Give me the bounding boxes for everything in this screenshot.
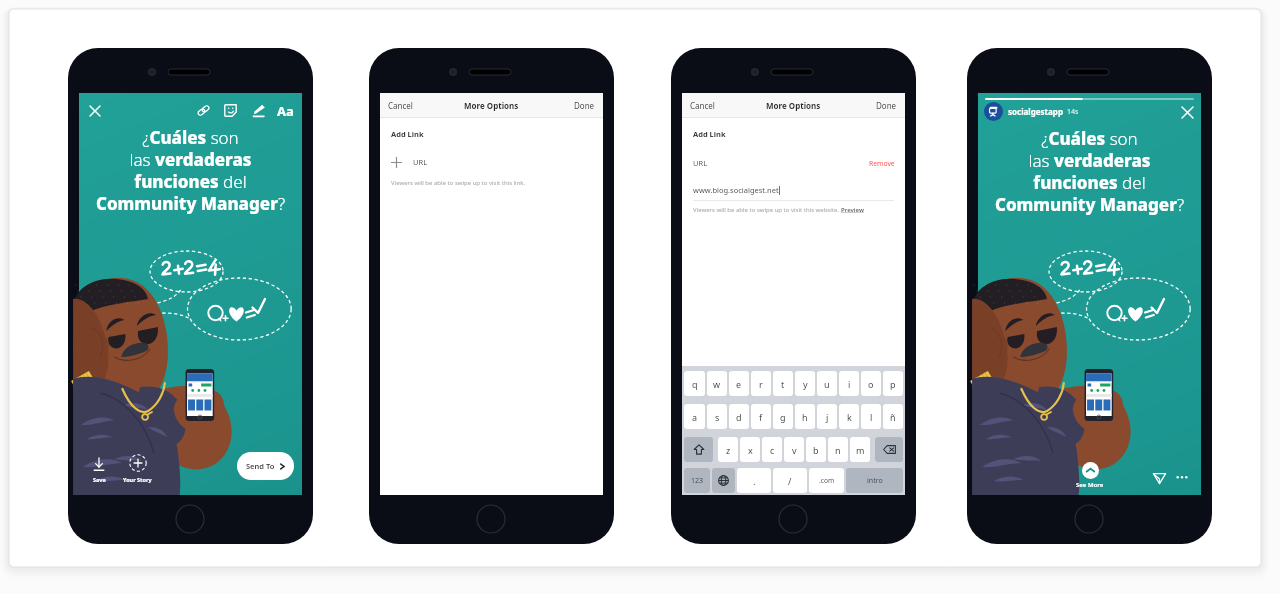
- button[interactable]: Cancel: [388, 100, 413, 111]
- staticText: g: [780, 411, 786, 423]
- staticText: Preview: [841, 206, 864, 214]
- button[interactable]: g: [773, 404, 793, 429]
- button[interactable]: Your Story: [123, 454, 152, 483]
- staticText: More Options: [464, 100, 519, 111]
- staticText: b: [813, 444, 819, 456]
- staticText: j: [826, 411, 829, 423]
- button[interactable]: i: [839, 371, 859, 396]
- staticText: u: [824, 378, 830, 390]
- button[interactable]: Done: [574, 100, 595, 111]
- button[interactable]: o: [861, 371, 881, 396]
- button[interactable]: u: [817, 371, 837, 396]
- staticText: Cancel: [690, 100, 715, 111]
- button[interactable]: p: [883, 371, 903, 396]
- staticText: d: [736, 411, 742, 423]
- staticText: .com: [819, 476, 835, 485]
- button[interactable]: w: [707, 371, 727, 396]
- staticText: y: [803, 378, 808, 390]
- button[interactable]: c: [762, 437, 782, 462]
- button[interactable]: See More: [1076, 462, 1104, 489]
- staticText: o: [868, 378, 874, 390]
- button[interactable]: .: [737, 468, 771, 493]
- button[interactable]: q: [684, 371, 705, 396]
- staticText: i: [848, 378, 851, 390]
- staticText: www.blog.socialgest.net: [693, 185, 779, 195]
- button[interactable]: l: [861, 404, 881, 429]
- button[interactable]: z: [718, 437, 738, 462]
- button[interactable]: Share: [1150, 468, 1168, 486]
- staticText: Viewers will be able to swipe up to visi…: [391, 179, 526, 187]
- staticText: socialgestapp: [1008, 106, 1063, 117]
- staticText: r: [759, 378, 763, 390]
- staticText: t: [781, 378, 785, 390]
- button[interactable]: m: [850, 437, 870, 462]
- button[interactable]: Stickers: [220, 100, 241, 121]
- button[interactable]: intro: [846, 468, 903, 493]
- staticText: ¿Cuáles son las verdaderas funciones del…: [85, 126, 296, 215]
- staticText: Viewers will be able to swipe up to visi…: [693, 206, 841, 214]
- button[interactable]: Text: [275, 100, 296, 121]
- button[interactable]: f: [751, 404, 771, 429]
- button[interactable]: r: [751, 371, 771, 396]
- button[interactable]: .com: [809, 468, 844, 493]
- staticText: Done: [574, 100, 595, 111]
- staticText: intro: [867, 476, 883, 486]
- button[interactable]: 123: [684, 468, 710, 493]
- button[interactable]: n: [828, 437, 848, 462]
- staticText: /: [788, 475, 792, 487]
- staticText: Add Link: [693, 129, 726, 139]
- button[interactable]: x: [740, 437, 760, 462]
- button[interactable]: /: [773, 468, 807, 493]
- staticText: Done: [876, 100, 897, 111]
- button[interactable]: Send To: [237, 452, 294, 480]
- staticText: More Options: [766, 100, 821, 111]
- staticText: v: [792, 444, 797, 456]
- staticText: k: [847, 411, 852, 423]
- staticText: 14s: [1067, 107, 1079, 117]
- button[interactable]: h: [795, 404, 815, 429]
- staticText: 123: [691, 476, 704, 486]
- staticText: See More: [1076, 481, 1104, 489]
- staticText: q: [692, 378, 698, 390]
- button[interactable]: Close: [1178, 103, 1196, 121]
- staticText: n: [835, 444, 841, 456]
- button[interactable]: Done: [876, 100, 897, 111]
- button[interactable]: More options: [1173, 468, 1191, 486]
- staticText: w: [713, 378, 721, 390]
- staticText: Remove: [869, 159, 895, 168]
- button[interactable]: v: [784, 437, 804, 462]
- staticText: Send To: [246, 461, 275, 471]
- button[interactable]: t: [773, 371, 793, 396]
- button[interactable]: Remove: [869, 159, 895, 168]
- button[interactable]: Switch language: [712, 468, 735, 493]
- button[interactable]: Preview: [841, 206, 864, 214]
- button[interactable]: Add link: [193, 100, 214, 121]
- button[interactable]: y: [795, 371, 815, 396]
- button[interactable]: Cancel: [690, 100, 715, 111]
- button[interactable]: Draw: [248, 100, 269, 121]
- button[interactable]: d: [729, 404, 749, 429]
- button[interactable]: e: [729, 371, 749, 396]
- staticText: m: [856, 444, 865, 456]
- button[interactable]: ñ: [883, 404, 903, 429]
- button[interactable]: Backspace: [875, 437, 903, 462]
- staticText: h: [802, 411, 808, 423]
- button[interactable]: Shift: [684, 437, 713, 462]
- staticText: x: [748, 444, 753, 456]
- staticText: Aa: [277, 102, 294, 120]
- button[interactable]: j: [817, 404, 837, 429]
- button[interactable]: a: [684, 404, 705, 429]
- button[interactable]: k: [839, 404, 859, 429]
- button[interactable]: s: [707, 404, 727, 429]
- staticText: Your Story: [123, 476, 152, 483]
- button[interactable]: Save: [92, 458, 106, 483]
- staticText: e: [736, 378, 742, 390]
- staticText: z: [726, 444, 731, 456]
- staticText: c: [770, 444, 775, 456]
- button[interactable]: URL: [380, 152, 603, 172]
- staticText: ¿Cuáles son las verdaderas funciones del…: [984, 127, 1195, 216]
- button[interactable]: b: [806, 437, 826, 462]
- staticText: a: [692, 411, 698, 423]
- button[interactable]: Close: [84, 100, 105, 121]
- staticText: .: [753, 475, 756, 487]
